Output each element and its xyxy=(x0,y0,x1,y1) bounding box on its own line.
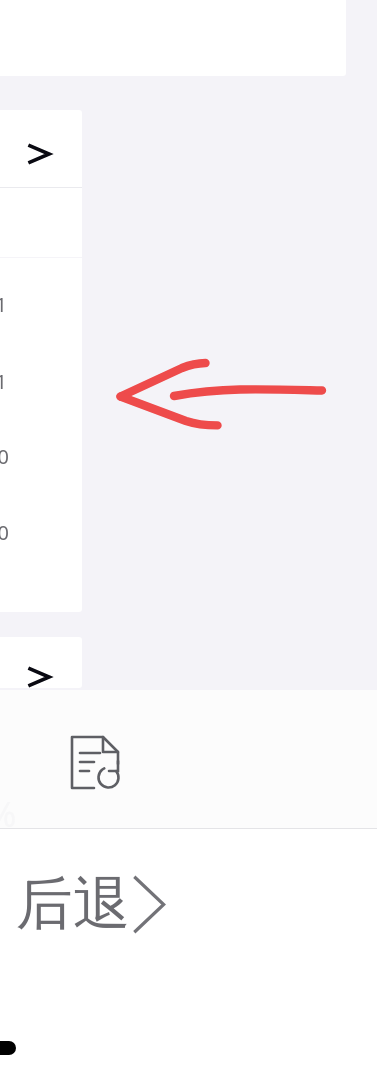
staticText: 21 xyxy=(0,291,7,318)
staticText: 后退 xyxy=(16,868,130,940)
staticText: 70 xyxy=(0,519,9,546)
staticText: 60 xyxy=(0,443,9,470)
button[interactable] xyxy=(0,637,82,688)
staticText: 21 xyxy=(0,368,7,395)
button[interactable]: 后退 xyxy=(16,861,164,947)
button[interactable] xyxy=(0,110,82,612)
button[interactable]: Refresh document xyxy=(54,714,138,811)
